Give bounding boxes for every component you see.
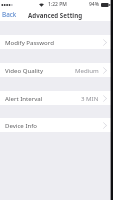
button[interactable]: Device Info (0, 118, 113, 132)
staticText: Modify Password (5, 38, 54, 46)
staticText: Back (2, 10, 17, 19)
staticText: Medium (75, 66, 99, 74)
other: Open (103, 122, 107, 129)
staticText: 94% (89, 1, 99, 8)
staticText: 1:22 PM (48, 1, 67, 8)
button[interactable]: Video Quality (0, 63, 113, 77)
button[interactable]: Back (0, 8, 21, 21)
button[interactable]: Modify Password (0, 35, 113, 49)
button[interactable]: Alert Interval (0, 91, 113, 105)
staticText: 3 MIN (81, 94, 99, 102)
staticText: Video Quality (5, 66, 44, 74)
staticText: Alert Interval (5, 94, 43, 102)
other: Open (103, 39, 107, 46)
other: Open (103, 67, 107, 74)
other: Open (103, 95, 107, 102)
staticText: Device Info (5, 121, 37, 129)
staticText: Advanced Setting (28, 11, 83, 19)
